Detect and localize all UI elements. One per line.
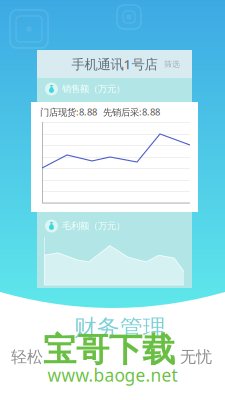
staticText: www.baoge.net [47,363,177,386]
staticText: 筛选 [164,59,180,69]
button[interactable]: 筛选 [160,56,184,72]
staticText: 轻松 [11,347,43,367]
staticText: 宝哥下载 [43,329,175,370]
staticText: 门店现货:8.88 先销后采:8.88 [40,106,160,118]
staticText: 销售额（万元） [62,83,125,95]
staticText: 手机通讯1号店 [71,55,157,73]
staticText: 财务管理 [74,314,166,342]
staticText: 无忧 [180,347,212,367]
staticText: 毛利额（万元） [62,220,125,232]
